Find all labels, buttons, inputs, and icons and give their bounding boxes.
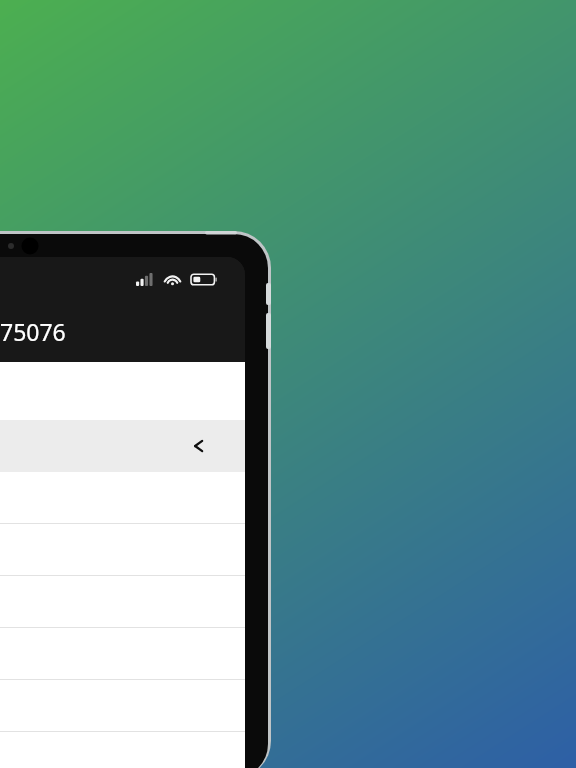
other: Previous (191, 438, 207, 454)
staticText: 75076 (0, 316, 66, 347)
other: Wi-Fi (164, 273, 181, 286)
other: Battery (191, 273, 217, 286)
other: Cellular signal (136, 273, 153, 286)
button[interactable]: Previous (0, 420, 245, 472)
